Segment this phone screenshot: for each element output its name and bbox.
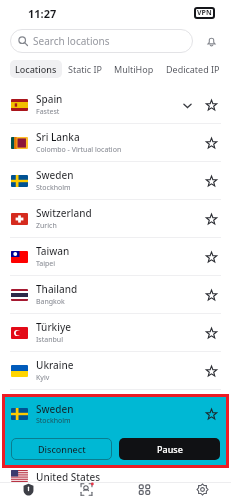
staticText: Search locations (33, 34, 110, 48)
staticText: Türkiye (36, 320, 71, 334)
button[interactable]: Spain (0, 86, 231, 123)
button[interactable]: Pause (119, 438, 220, 460)
staticText: Stockholm (36, 183, 71, 193)
button[interactable]: Favorite (202, 96, 220, 114)
staticText: Fastest (36, 107, 60, 117)
button[interactable]: Favorite (202, 286, 220, 304)
button[interactable]: MultiHop (108, 60, 160, 78)
staticText: Sweden (36, 168, 74, 182)
button[interactable]: Favorite (202, 324, 220, 342)
button[interactable]: Favorite (202, 405, 220, 423)
staticText: Colombo - Virtual location (36, 145, 122, 155)
button[interactable]: Sweden (0, 162, 231, 199)
staticText: Sweden (36, 402, 74, 416)
button[interactable]: Locations (10, 60, 62, 78)
staticText: Thailand (36, 282, 78, 296)
staticText: Switzerland (36, 206, 92, 220)
staticText: MultiHop (114, 63, 154, 75)
button[interactable]: Thailand (0, 276, 231, 313)
staticText: Istanbul (36, 335, 63, 345)
button[interactable]: Products (115, 483, 173, 500)
staticText: Taipei (36, 259, 56, 269)
staticText: Pause (157, 443, 183, 455)
staticText: Locations (15, 63, 57, 75)
button[interactable]: Favorite (202, 362, 220, 380)
button[interactable]: Taiwan (0, 238, 231, 275)
staticText: VPN (197, 8, 212, 18)
button[interactable]: Alternative ID (57, 483, 115, 500)
staticText: Kyiv (36, 373, 50, 383)
button[interactable]: Ukraine (0, 352, 231, 389)
button[interactable]: Favorite (202, 172, 220, 190)
staticText: 11:27 (28, 6, 57, 21)
staticText: Spain (36, 92, 63, 106)
staticText: Sri Lanka (36, 130, 80, 144)
button[interactable]: Search locations (10, 29, 193, 53)
button[interactable]: Switzerland (0, 200, 231, 237)
button[interactable]: Expand (178, 96, 196, 114)
staticText: Stockholm (36, 416, 71, 426)
button[interactable]: Sri Lanka (0, 124, 231, 161)
staticText: Ukraine (36, 358, 74, 372)
staticText: Dedicated IP (166, 63, 220, 75)
button[interactable]: Disconnect (11, 438, 112, 460)
staticText: Bangkok (36, 297, 65, 307)
button[interactable]: United States (0, 470, 231, 482)
staticText: Disconnect (38, 443, 86, 455)
button[interactable]: Settings (173, 483, 231, 500)
button[interactable]: Türkiye (0, 314, 231, 351)
button[interactable]: Favorite (202, 134, 220, 152)
button[interactable]: Notifications (201, 31, 221, 51)
button[interactable]: Dedicated IP (160, 60, 226, 78)
button[interactable]: VPN (0, 483, 57, 500)
staticText: United States (36, 470, 101, 482)
button[interactable]: Sweden (11, 402, 220, 426)
staticText: Static IP (68, 63, 102, 75)
button[interactable]: Favorite (202, 210, 220, 228)
button[interactable]: Favorite (202, 248, 220, 266)
button[interactable]: Static IP (62, 60, 108, 78)
staticText: Zurich (36, 221, 57, 231)
staticText: Taiwan (36, 244, 70, 258)
